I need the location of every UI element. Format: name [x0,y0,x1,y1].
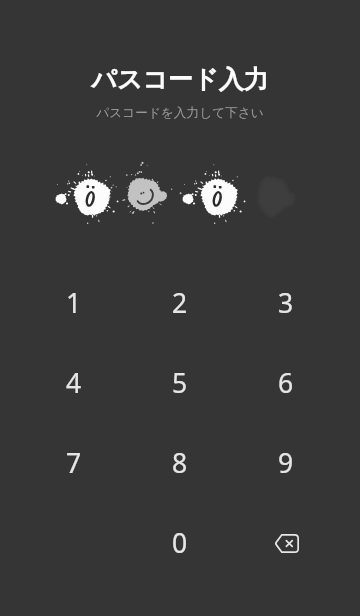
staticText: 9 [278,445,294,481]
staticText: 8 [172,445,188,481]
button[interactable]: 2 [136,267,224,339]
staticText: 4 [66,365,82,401]
staticText: 6 [278,365,294,401]
button[interactable]: 8 [136,427,224,499]
button[interactable]: 6 [242,347,330,419]
button[interactable]: 5 [136,347,224,419]
staticText: パスコードを入力して下さい [0,105,360,121]
button[interactable]: 3 [242,267,330,339]
button[interactable]: 4 [30,347,118,419]
staticText: 3 [278,285,294,321]
staticText: 5 [172,365,188,401]
button[interactable]: 1 [30,267,118,339]
button[interactable]: 9 [242,427,330,499]
button[interactable]: 7 [30,427,118,499]
staticText: 7 [66,445,82,481]
button[interactable]: Backspace [242,507,330,579]
staticText: 0 [172,525,188,561]
staticText: 2 [172,285,188,321]
button[interactable]: 0 [136,507,224,579]
staticText: パスコード入力 [0,64,360,95]
staticText: 1 [66,285,82,321]
